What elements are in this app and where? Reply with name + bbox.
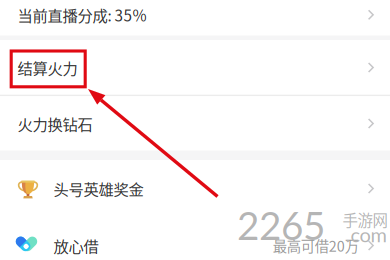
staticText: 手游网 [342, 208, 387, 231]
staticText: 最高可借20万 [273, 235, 359, 256]
staticText: 头号英雄奖金 [53, 177, 143, 200]
staticText: 放心借 [53, 234, 98, 257]
button[interactable]: 结算火力 [0, 40, 390, 95]
staticText: .com [345, 222, 386, 246]
button[interactable]: 头号英雄奖金 [0, 160, 390, 217]
button[interactable]: 火力换钻石 [0, 96, 390, 151]
staticText: 2265 [237, 202, 325, 248]
staticText: 当前直播分成: 35% [17, 4, 146, 26]
button[interactable]: 放心借 [0, 217, 390, 260]
staticText: 火力换钻石 [17, 112, 92, 135]
button[interactable]: 当前直播分成: 35% [0, 0, 390, 33]
staticText: 结算火力 [17, 56, 77, 79]
